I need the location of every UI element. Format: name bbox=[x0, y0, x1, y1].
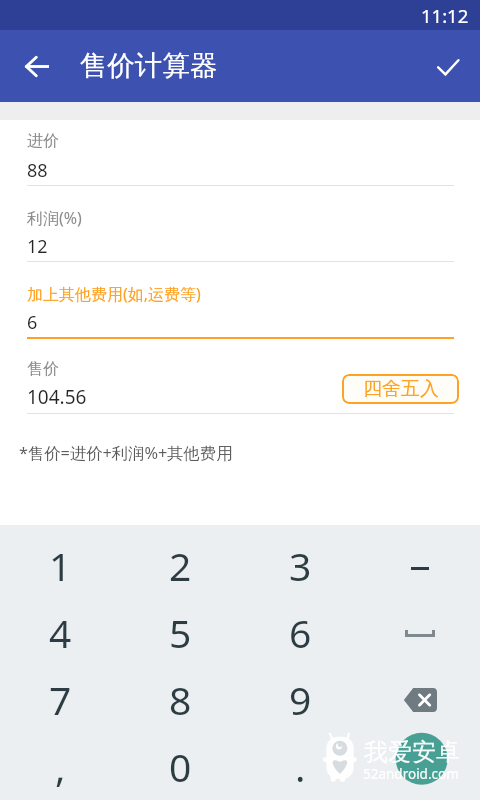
staticText: 加上其他费用(如,运费等) bbox=[27, 283, 201, 305]
staticText: 9 bbox=[289, 673, 312, 726]
staticText: 2 bbox=[169, 539, 192, 592]
staticText: 我爱安卓 bbox=[364, 737, 460, 767]
staticText: 11:12 bbox=[421, 3, 469, 28]
button[interactable]: 加上其他费用(如,运费等) bbox=[0, 272, 480, 348]
button[interactable]: 0 bbox=[120, 733, 240, 800]
staticText: 104.56 bbox=[27, 384, 87, 410]
staticText: 88 bbox=[27, 158, 48, 183]
button[interactable]: 利润(%) bbox=[0, 196, 480, 272]
button[interactable]: 4 bbox=[0, 599, 120, 666]
staticText: 1 bbox=[49, 539, 72, 592]
staticText: 售价 bbox=[27, 359, 59, 379]
staticText: 5 bbox=[169, 606, 192, 659]
staticText: 4 bbox=[49, 606, 72, 659]
staticText: 0 bbox=[169, 740, 192, 793]
button[interactable]: Minus bbox=[360, 532, 480, 599]
staticText: 6 bbox=[27, 310, 38, 335]
staticText: . bbox=[295, 740, 306, 793]
staticText: 四舍五入 bbox=[363, 377, 439, 401]
button[interactable]: Back bbox=[0, 30, 74, 102]
button[interactable]: . bbox=[240, 733, 360, 800]
button[interactable]: 7 bbox=[0, 666, 120, 733]
staticText: 进价 bbox=[27, 131, 59, 151]
button[interactable]: 四舍五入 bbox=[342, 374, 459, 404]
button[interactable]: 1 bbox=[0, 532, 120, 599]
button[interactable]: 8 bbox=[120, 666, 240, 733]
button[interactable]: 2 bbox=[120, 532, 240, 599]
button[interactable]: 6 bbox=[240, 599, 360, 666]
staticText: *售价=进价+利润%+其他费用 bbox=[19, 442, 233, 464]
staticText: 利润(%) bbox=[27, 207, 82, 229]
staticText: 3 bbox=[289, 539, 312, 592]
staticText: 6 bbox=[289, 606, 312, 659]
button[interactable]: 9 bbox=[240, 666, 360, 733]
button[interactable]: Blank key bbox=[360, 733, 480, 800]
staticText: , bbox=[55, 740, 66, 793]
button[interactable]: , bbox=[0, 733, 120, 800]
staticText: 8 bbox=[169, 673, 192, 726]
staticText: 7 bbox=[49, 673, 72, 726]
button[interactable]: 进价 bbox=[0, 120, 480, 196]
staticText: 52android.com bbox=[363, 765, 459, 783]
button[interactable]: Delete bbox=[360, 666, 480, 733]
button[interactable]: 售价 bbox=[0, 348, 480, 424]
button[interactable]: 5 bbox=[120, 599, 240, 666]
staticText: 售价计算器 bbox=[80, 49, 218, 84]
button[interactable]: 3 bbox=[240, 532, 360, 599]
button[interactable]: Confirm bbox=[416, 30, 480, 102]
button[interactable]: Space bbox=[360, 599, 480, 666]
staticText: 12 bbox=[27, 234, 48, 259]
